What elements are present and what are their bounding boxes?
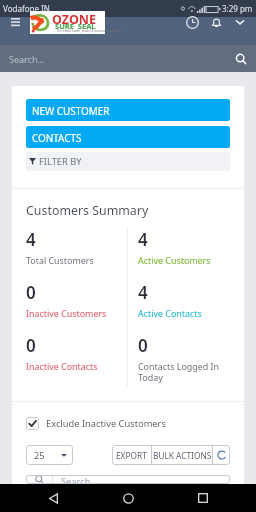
staticText: Contacts Logged In Today (138, 360, 220, 383)
button[interactable]: Exclude Inactive Customers (26, 416, 166, 430)
staticText: 4 (26, 228, 36, 251)
button[interactable]: Home (106, 484, 150, 512)
staticText: EXPORT (116, 450, 147, 461)
button[interactable]: CONTACTS (26, 126, 230, 148)
staticText: Inactive Contacts (26, 360, 98, 372)
button[interactable]: History (180, 11, 204, 33)
button[interactable]: Search (26, 475, 230, 484)
button[interactable]: Back (31, 484, 75, 512)
staticText: 25 (34, 449, 45, 462)
button[interactable]: 25 (26, 445, 73, 465)
staticText: The simple health, quality & punctuality… (57, 29, 122, 33)
staticText: NEW CUSTOMER (32, 104, 110, 117)
button[interactable]: BULK ACTIONS (152, 445, 212, 465)
button[interactable]: FILTER BY (26, 152, 230, 171)
staticText: Inactive Customers (26, 307, 107, 319)
staticText: Active Customers (138, 254, 211, 266)
button[interactable]: More (228, 11, 252, 33)
staticText: 4 (138, 228, 148, 251)
button[interactable]: Menu (4, 14, 26, 30)
button[interactable]: Notifications (204, 11, 228, 33)
button[interactable]: NEW CUSTOMER (26, 99, 230, 121)
button[interactable]: Recents (181, 484, 225, 512)
staticText: BULK ACTIONS (153, 450, 212, 461)
staticText: FILTER BY (39, 155, 82, 168)
staticText: 4 (138, 281, 148, 304)
staticText: Active Contacts (138, 307, 202, 319)
staticText: SURE SEAL (55, 21, 96, 31)
staticText: 0 (26, 334, 36, 357)
button[interactable]: Search... (0, 45, 256, 72)
button[interactable]: Refresh (213, 445, 230, 465)
staticText: 0 (26, 281, 36, 304)
staticText: OZONE (52, 11, 96, 28)
staticText: Exclude Inactive Customers (46, 417, 166, 430)
staticText: 3:29 pm (222, 3, 253, 14)
button[interactable]: EXPORT (112, 445, 151, 465)
staticText: Search... (9, 53, 45, 65)
staticText: 0 (138, 334, 148, 357)
staticText: CONTACTS (32, 131, 82, 144)
staticText: Vodafone IN (3, 3, 50, 14)
staticText: Search (61, 475, 91, 484)
staticText: Total Customers (26, 254, 94, 266)
staticText: Customers Summary (26, 202, 149, 219)
